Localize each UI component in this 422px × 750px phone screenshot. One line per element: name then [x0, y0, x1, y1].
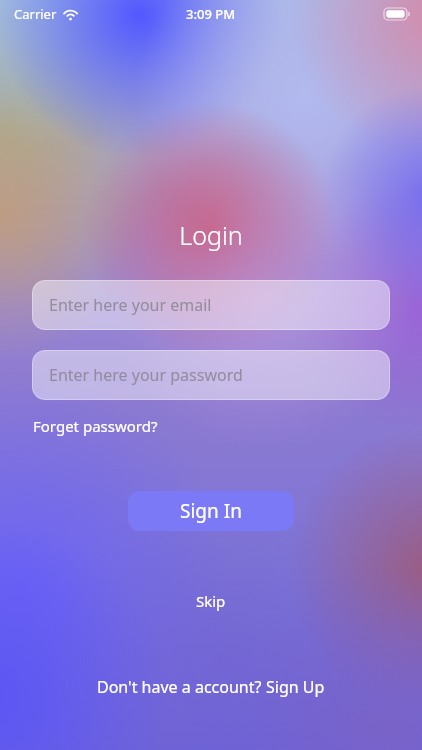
- staticText: Forget password?: [33, 416, 158, 436]
- staticText: 3:09 PM: [186, 5, 236, 23]
- button[interactable]: Enter here your email: [32, 280, 390, 330]
- staticText: Enter here your email: [49, 294, 212, 316]
- staticText: Login: [0, 218, 422, 252]
- staticText: Sign Up: [266, 676, 325, 698]
- staticText: Skip: [196, 591, 226, 611]
- staticText: Carrier: [14, 5, 57, 23]
- staticText: Enter here your password: [49, 364, 243, 386]
- button[interactable]: Enter here your password: [32, 350, 390, 400]
- staticText: Sign In: [180, 498, 242, 524]
- button[interactable]: Skip: [186, 588, 236, 614]
- staticText: Don't have a account?: [97, 676, 266, 698]
- button[interactable]: Sign Up: [266, 676, 325, 698]
- button[interactable]: Forget password?: [32, 414, 159, 438]
- button[interactable]: Sign In: [128, 491, 294, 531]
